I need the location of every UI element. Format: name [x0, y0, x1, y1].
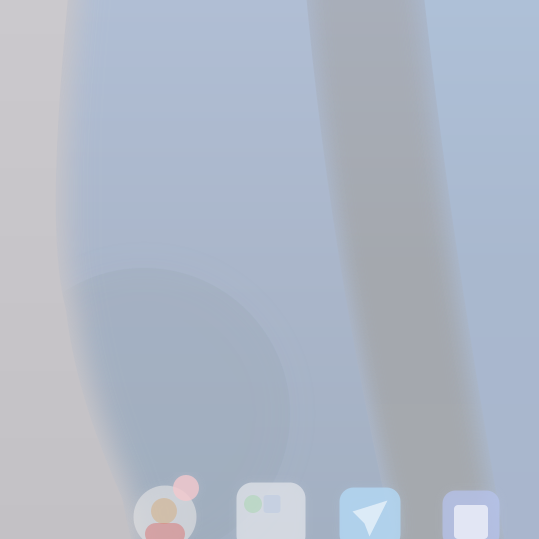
button[interactable]: Notes — [442, 490, 499, 539]
button[interactable]: Telegram — [339, 487, 400, 539]
button[interactable]: Contact — [126, 480, 204, 539]
button[interactable]: Messages — [236, 482, 305, 539]
